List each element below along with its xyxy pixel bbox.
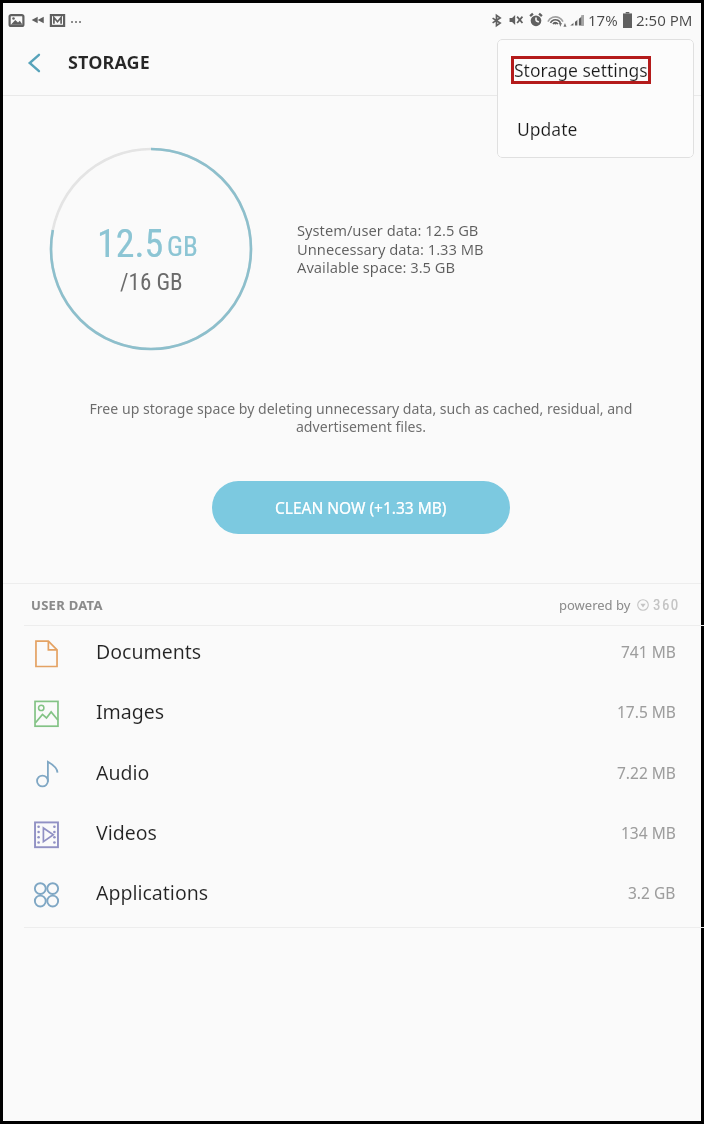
staticText: /16 GB — [120, 269, 183, 296]
staticText: Available space: 3.5 GB — [297, 257, 456, 277]
button[interactable]: Videos — [3, 802, 701, 863]
button[interactable]: CLEAN NOW (+1.33 MB) — [212, 481, 510, 534]
staticText: Storage settings — [514, 58, 648, 82]
staticText: 12.5 — [97, 222, 164, 267]
button[interactable]: Applications — [3, 862, 701, 923]
staticText: USER DATA — [31, 596, 103, 614]
staticText: Applications — [96, 879, 209, 906]
button[interactable]: Storage settings — [497, 39, 694, 99]
staticText: 7.22 MB — [617, 762, 676, 783]
staticText: GB — [167, 231, 198, 263]
staticText: Update — [517, 117, 578, 141]
staticText: Images — [96, 698, 165, 725]
staticText: powered by — [559, 596, 631, 614]
button[interactable]: Update — [497, 99, 694, 158]
staticText: 134 MB — [621, 822, 676, 843]
button[interactable]: Images — [3, 681, 701, 742]
staticText: 17.5 MB — [617, 701, 676, 722]
staticText: 741 MB — [621, 641, 676, 662]
staticText: CLEAN NOW (+1.33 MB) — [275, 497, 447, 518]
button[interactable]: Back — [12, 40, 58, 86]
staticText: 360 — [653, 596, 680, 614]
staticText: 2:50 PM — [636, 10, 693, 30]
staticText: 17% — [588, 10, 618, 30]
staticText: System/user data: 12.5 GB — [297, 220, 479, 240]
staticText: Audio — [96, 759, 150, 786]
staticText: Videos — [96, 819, 157, 846]
button[interactable]: Documents — [3, 621, 701, 682]
staticText: 3.2 GB — [628, 882, 676, 903]
staticText: ... — [70, 7, 83, 27]
staticText: Documents — [96, 638, 202, 665]
staticText: Free up storage space by deleting unnece… — [51, 399, 671, 436]
button[interactable]: Audio — [3, 742, 701, 803]
staticText: Unnecessary data: 1.33 MB — [297, 239, 484, 259]
staticText: STORAGE — [68, 50, 150, 75]
